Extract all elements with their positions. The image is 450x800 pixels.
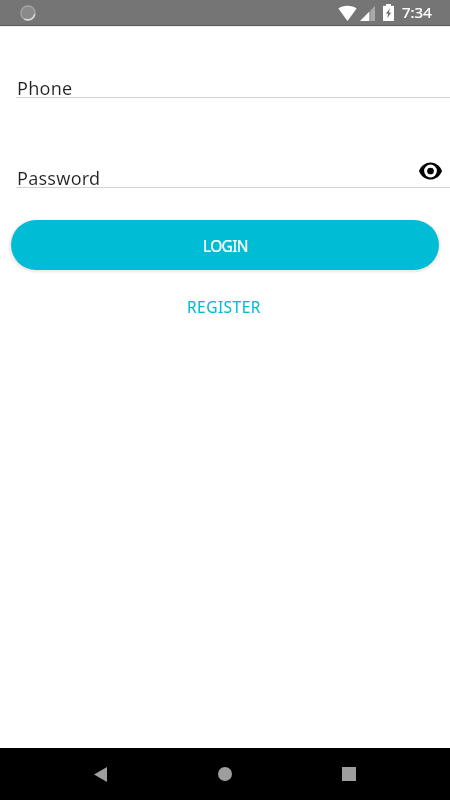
staticText: REGISTER (187, 296, 261, 316)
button[interactable]: Home (201, 750, 249, 798)
staticText: LOGIN (203, 235, 248, 256)
staticText: Password (17, 166, 101, 191)
button[interactable]: LOGIN (11, 220, 439, 270)
staticText: Phone (17, 76, 73, 101)
button[interactable]: Phone (0, 73, 450, 99)
button[interactable]: Recent apps (325, 750, 373, 798)
staticText: 7:34 (402, 2, 432, 22)
button[interactable]: Back (76, 750, 124, 798)
button[interactable]: Password (0, 163, 450, 189)
button[interactable]: Show password (417, 158, 443, 184)
button[interactable]: REGISTER (173, 288, 275, 324)
